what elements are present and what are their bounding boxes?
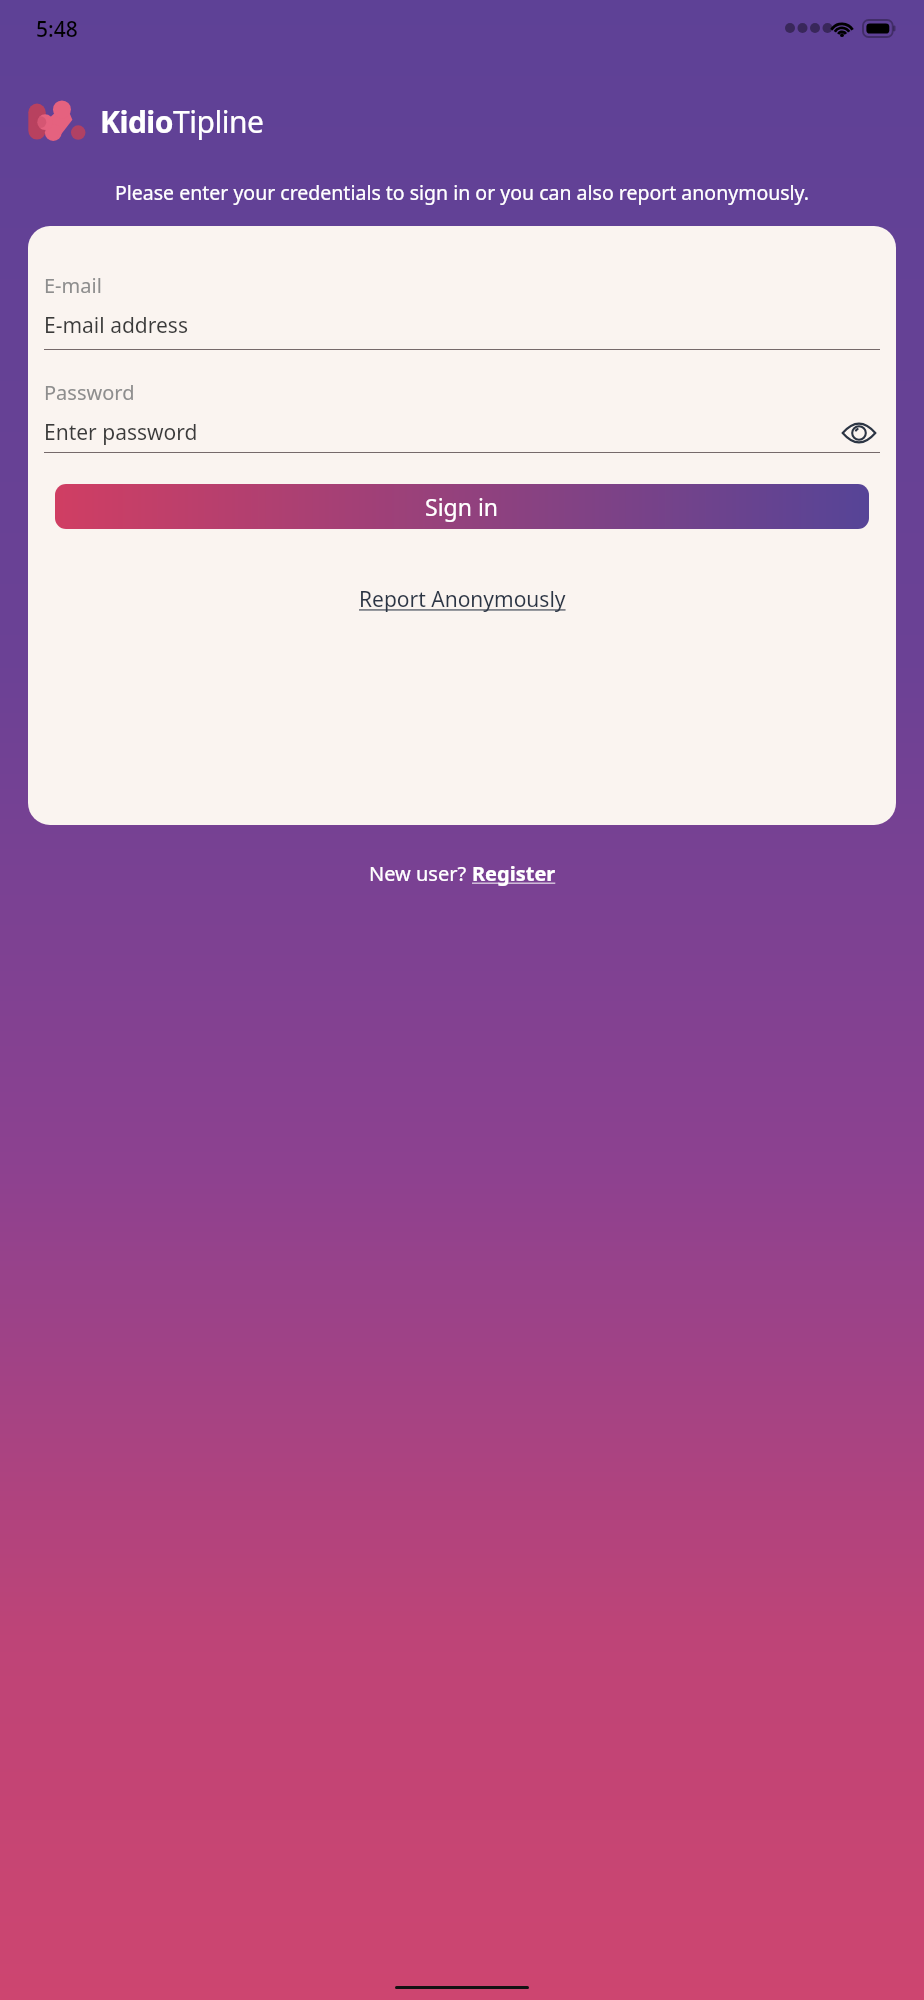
staticText: Please enter your credentials to sign in… — [31, 179, 893, 206]
staticText: Report Anonymously — [359, 585, 566, 614]
staticText: Sign in — [425, 491, 499, 522]
staticText: E-mail address — [44, 311, 188, 340]
button[interactable]: Enter password — [44, 418, 880, 453]
staticText: New user? — [369, 860, 472, 887]
staticText: KidioTipline — [100, 101, 264, 142]
staticText: 5:48 — [36, 15, 78, 44]
button[interactable]: Register — [472, 860, 556, 887]
button[interactable]: Show password — [838, 420, 880, 446]
staticText: E-mail — [44, 272, 102, 299]
button[interactable]: Report Anonymously — [351, 580, 574, 619]
staticText: Password — [44, 379, 135, 406]
button[interactable]: Sign in — [55, 484, 869, 529]
staticText: Register — [472, 860, 556, 887]
button[interactable]: E-mail address — [44, 311, 880, 350]
staticText: Enter password — [44, 418, 838, 447]
